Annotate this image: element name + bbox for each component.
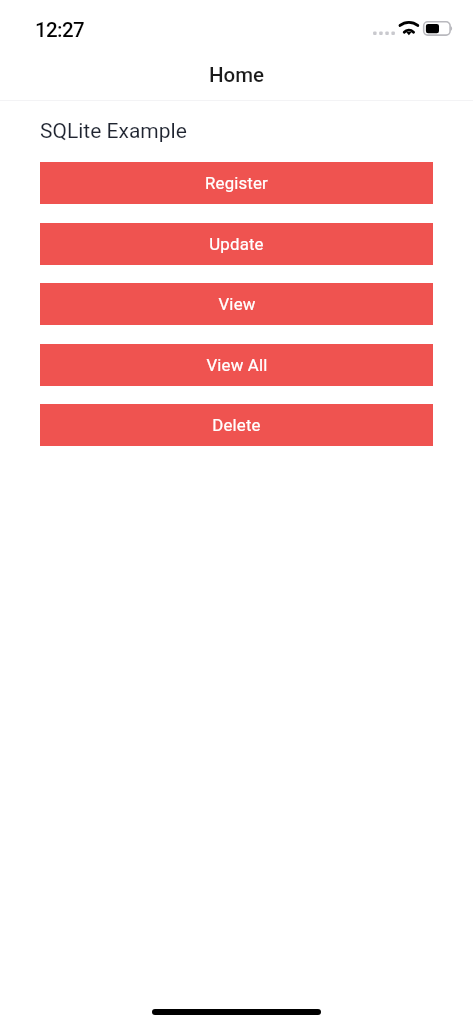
button[interactable]: Delete	[40, 404, 433, 446]
staticText: Home	[209, 63, 265, 87]
staticText: Delete	[212, 415, 261, 435]
staticText: View All	[206, 355, 268, 375]
other: Cellular signal, Wi-Fi and battery statu…	[373, 19, 455, 39]
button[interactable]: View All	[40, 344, 433, 386]
button[interactable]: View	[40, 283, 433, 325]
button[interactable]: Register	[40, 162, 433, 204]
staticText: SQLite Example	[40, 119, 187, 144]
button[interactable]: Update	[40, 223, 433, 265]
staticText: 12:27	[35, 18, 85, 42]
staticText: Register	[205, 173, 268, 193]
staticText: View	[218, 294, 256, 314]
staticText: Update	[209, 234, 264, 254]
